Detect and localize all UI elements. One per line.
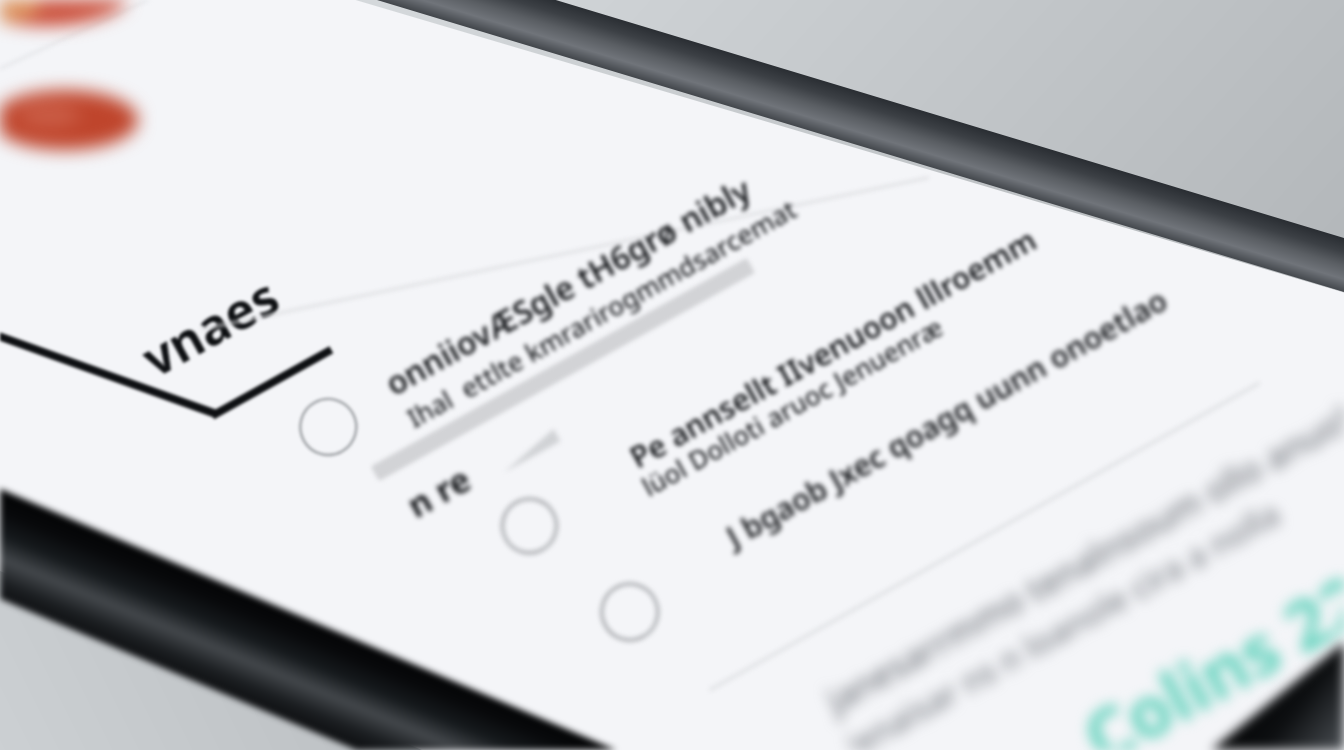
button[interactable]: n re label	[398, 452, 578, 522]
button[interactable]: Edit item	[496, 492, 570, 562]
button[interactable]: Secondary list item	[610, 392, 1030, 562]
button[interactable]: Primary list item	[392, 216, 792, 426]
button[interactable]: Open vnaes section	[150, 286, 350, 382]
button[interactable]: Tertiary list item	[700, 470, 1220, 670]
button[interactable]: Refresh item	[596, 576, 670, 650]
button[interactable]: Footer list item	[820, 600, 1340, 750]
button[interactable]: Toggle	[296, 400, 366, 462]
button[interactable]: Colins 22 action	[1060, 600, 1344, 750]
